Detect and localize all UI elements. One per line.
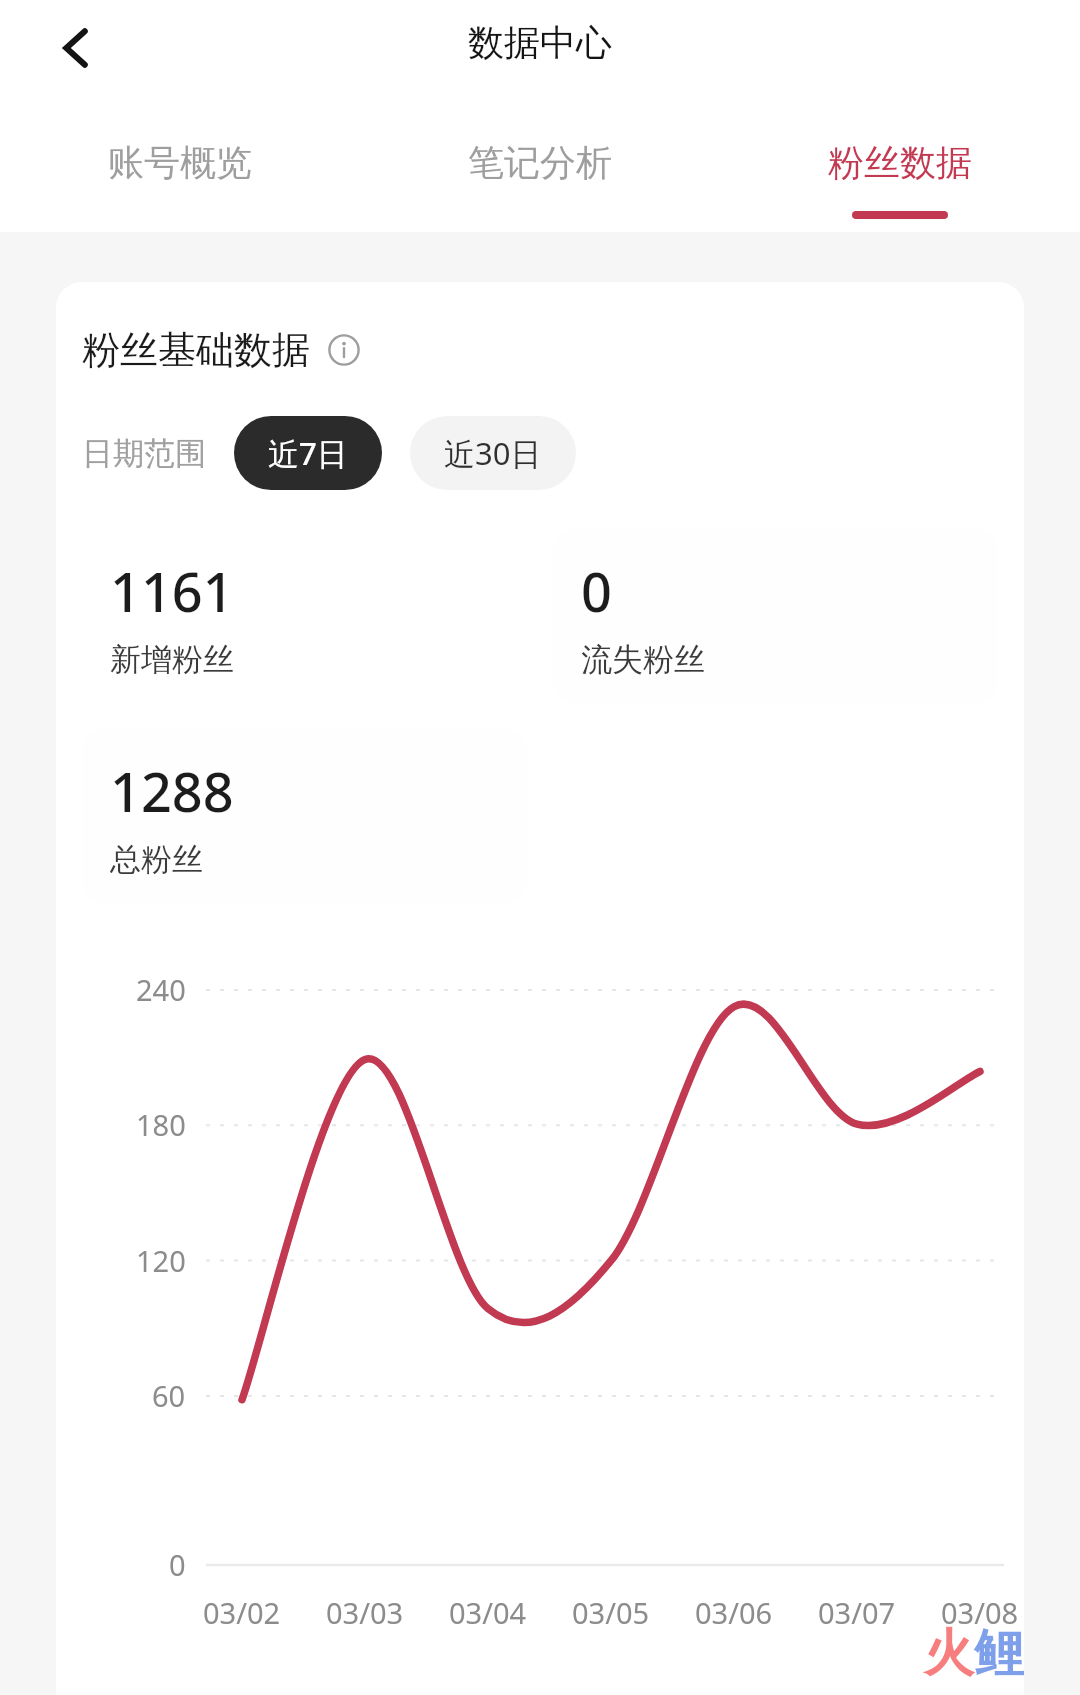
staticText: 鲤	[974, 1622, 1024, 1685]
staticText: 近7日	[268, 432, 348, 474]
button[interactable]: 1161	[82, 528, 527, 704]
staticText: 03/03	[326, 1593, 404, 1632]
button[interactable]: 近30日	[410, 416, 576, 490]
button[interactable]: 1288	[82, 728, 527, 904]
button[interactable]: 粉丝数据	[720, 140, 1080, 232]
staticText: 日期范围	[82, 434, 206, 473]
staticText: 03/05	[572, 1593, 650, 1632]
staticText: 03/04	[449, 1593, 527, 1632]
staticText: 新增粉丝	[110, 640, 234, 679]
button[interactable]: Back	[36, 8, 116, 88]
staticText: 1161	[110, 554, 234, 628]
button[interactable]: 账号概览	[0, 140, 360, 232]
staticText: 粉丝基础数据	[82, 326, 310, 374]
staticText: 笔记分析	[468, 140, 612, 185]
staticText: 120	[136, 1241, 186, 1280]
staticText: 180	[136, 1105, 186, 1144]
staticText: 火	[924, 1622, 974, 1685]
staticText: 1288	[110, 754, 234, 828]
staticText: 60	[152, 1376, 186, 1415]
staticText: 0	[169, 1545, 186, 1584]
staticText: 03/08	[941, 1593, 1019, 1632]
staticText: 数据中心	[468, 20, 612, 65]
button[interactable]: 0	[553, 528, 998, 704]
button[interactable]: 近7日	[234, 416, 382, 490]
staticText: 240	[136, 970, 186, 1009]
staticText: 近30日	[444, 432, 542, 474]
staticText: 总粉丝	[110, 840, 203, 879]
staticText: 03/02	[203, 1593, 281, 1632]
staticText: 03/06	[695, 1593, 773, 1632]
staticText: 03/07	[818, 1593, 896, 1632]
staticText: 粉丝数据	[828, 140, 972, 185]
staticText: 0	[581, 554, 612, 628]
button[interactable]: 笔记分析	[360, 140, 720, 232]
button[interactable]: Info	[326, 332, 362, 368]
staticText: 账号概览	[108, 140, 252, 185]
staticText: 流失粉丝	[581, 640, 705, 679]
